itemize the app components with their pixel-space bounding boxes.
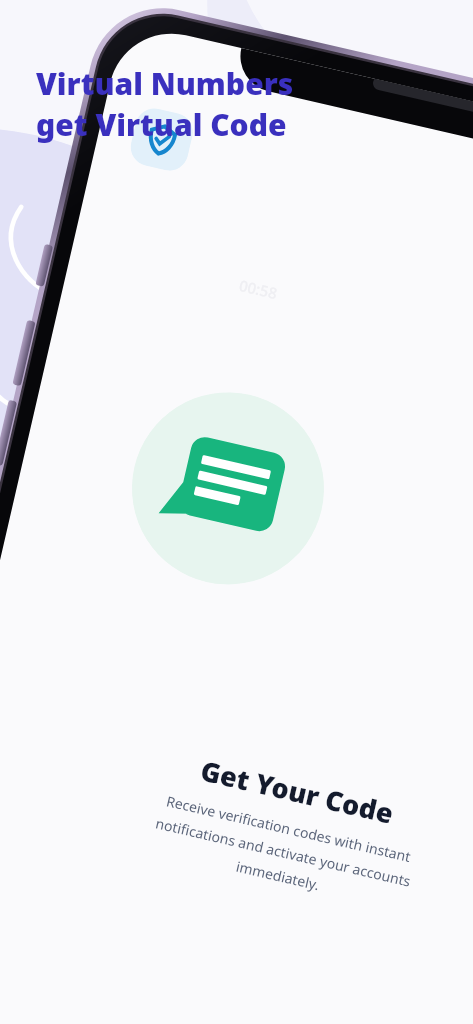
button[interactable]: Get Your Code	[102, 733, 473, 925]
staticText: Get Your Code	[197, 751, 397, 832]
staticText: 00:58	[237, 275, 280, 303]
staticText: Virtual Numbers	[36, 63, 294, 104]
staticText: Receive verification codes with instant …	[148, 790, 418, 914]
staticText: get Virtual Code	[36, 104, 287, 145]
